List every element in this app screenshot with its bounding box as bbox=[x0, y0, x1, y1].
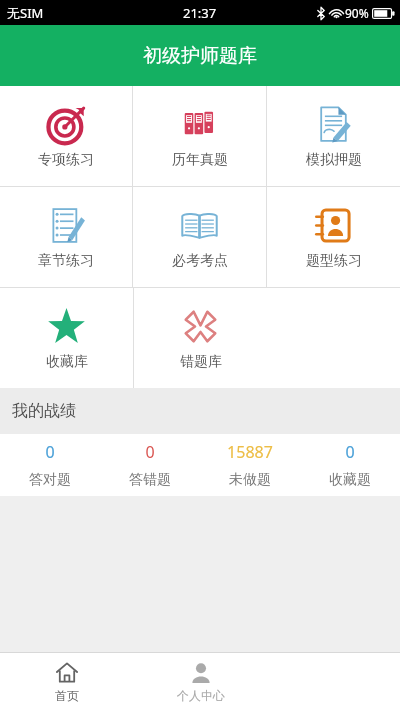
button[interactable]: 模拟押题 bbox=[267, 86, 400, 186]
button[interactable]: 收藏库 bbox=[0, 288, 133, 388]
staticText: 无SIM bbox=[7, 4, 44, 22]
staticText: 错题库 bbox=[180, 353, 222, 371]
staticText: 收藏库 bbox=[46, 353, 88, 371]
staticText: 0 bbox=[345, 441, 355, 463]
staticText: 收藏题 bbox=[329, 471, 371, 489]
button[interactable]: 0 bbox=[100, 434, 200, 496]
staticText: 0 bbox=[145, 441, 155, 463]
button[interactable]: 必考考点 bbox=[133, 187, 266, 287]
staticText: 个人中心 bbox=[177, 688, 225, 703]
staticText: 题型练习 bbox=[306, 252, 362, 270]
staticText: 21:37 bbox=[183, 4, 217, 22]
staticText: 初级护师题库 bbox=[143, 44, 257, 68]
button[interactable]: 15887 bbox=[200, 434, 300, 496]
staticText: 答对题 bbox=[29, 471, 71, 489]
staticText: 章节练习 bbox=[38, 252, 94, 270]
staticText: 首页 bbox=[55, 688, 79, 703]
staticText: 我的战绩 bbox=[12, 401, 76, 421]
staticText: 模拟押题 bbox=[306, 151, 362, 169]
button[interactable]: 首页 Home bbox=[0, 653, 134, 711]
button[interactable]: 错题库 bbox=[134, 288, 267, 388]
button[interactable]: 0 bbox=[300, 434, 400, 496]
staticText: 未做题 bbox=[229, 471, 271, 489]
button[interactable]: 章节练习 bbox=[0, 187, 132, 287]
staticText: 历年真题 bbox=[172, 151, 228, 169]
staticText: 90% bbox=[345, 5, 369, 21]
staticText: 0 bbox=[45, 441, 55, 463]
staticText: 必考考点 bbox=[172, 252, 228, 270]
staticText: 15887 bbox=[227, 441, 273, 463]
button[interactable]: 专项练习 bbox=[0, 86, 132, 186]
button[interactable]: 历年真题 bbox=[133, 86, 266, 186]
button[interactable]: 0 bbox=[0, 434, 100, 496]
staticText: 专项练习 bbox=[38, 151, 94, 169]
button[interactable]: 题型练习 bbox=[267, 187, 400, 287]
staticText: 答错题 bbox=[129, 471, 171, 489]
button[interactable]: 个人中心 Profile bbox=[134, 653, 267, 711]
